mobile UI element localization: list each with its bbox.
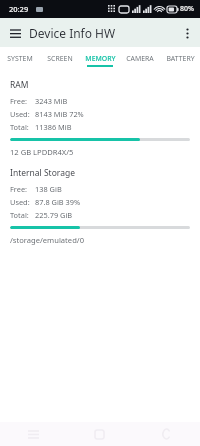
staticText: Used: [10, 197, 35, 207]
staticText: MEMORY [85, 54, 116, 63]
staticText: 138 GiB [35, 184, 62, 194]
staticText: RAM [10, 79, 29, 91]
staticText: 11386 MiB [35, 122, 72, 132]
button[interactable]: More options [177, 23, 197, 43]
staticText: Free: [10, 96, 35, 106]
button[interactable]: Open navigation menu [5, 23, 25, 43]
staticText: SYSTEM [7, 54, 33, 63]
staticText: CAMERA [126, 54, 154, 63]
staticText: 8143 MiB 72% [35, 109, 84, 119]
staticText: 12 GB LPDDR4X/5 [10, 147, 74, 157]
staticText: 3243 MiB [35, 96, 68, 106]
staticText: BATTERY [166, 54, 195, 63]
staticText: Total: [10, 210, 35, 220]
staticText: Used: [10, 109, 35, 119]
staticText: 87.8 GiB 39% [35, 197, 81, 207]
button[interactable]: BATTERY [160, 47, 200, 69]
staticText: Device Info HW [29, 25, 116, 41]
button[interactable]: CAMERA [120, 47, 160, 69]
staticText: Free: [10, 184, 35, 194]
staticText: Total: [10, 122, 35, 132]
staticText: SCREEN [47, 54, 73, 63]
staticText: /storage/emulated/0 [10, 235, 84, 245]
staticText: 20:29 [9, 4, 29, 14]
staticText: 80% [180, 4, 194, 14]
button[interactable]: MEMORY [80, 47, 120, 69]
staticText: Internal Storage [10, 167, 75, 179]
button[interactable]: SCREEN [40, 47, 80, 69]
button[interactable]: SYSTEM [0, 47, 40, 69]
staticText: 225.79 GiB [35, 210, 73, 220]
